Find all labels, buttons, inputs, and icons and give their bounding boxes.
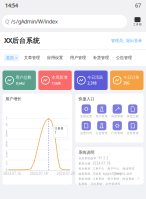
button[interactable]: 本周新增	[38, 70, 72, 90]
staticText: 应用设置	[80, 115, 92, 118]
staticText: 工具箱	[133, 23, 142, 26]
staticText: 0.6	[6, 134, 8, 144]
button[interactable]: 应用设置	[78, 104, 94, 118]
button[interactable]: 应用设置	[45, 54, 65, 61]
staticText: 补货管理	[93, 55, 109, 60]
button[interactable]: 今日活跃	[74, 70, 108, 90]
staticText: 今日订单	[123, 75, 139, 80]
staticText: 包含模块: 订单中心、用户中心、商品管理	[78, 167, 134, 170]
button[interactable]: 今日订单	[110, 70, 143, 90]
staticText: 更新日期: 2024-07-18	[78, 162, 110, 165]
staticText: 公告管理	[96, 131, 108, 135]
button[interactable]: 补货管理	[91, 54, 111, 61]
staticText: 运营日历	[80, 131, 92, 135]
staticText: 文件管理	[127, 131, 139, 135]
staticText: 告系统、日志系统、文件管理等	[78, 182, 120, 185]
staticText: 8,642	[15, 80, 24, 86]
staticText: 广告管理	[111, 131, 123, 135]
staticText: 0.8	[6, 123, 8, 134]
button[interactable]: 文章管理	[22, 54, 42, 61]
staticText: 0	[6, 169, 8, 172]
staticText: 当前系统版本: V1.5.2	[78, 156, 108, 160]
button[interactable]: 公告管理	[94, 121, 109, 135]
staticText: 本页文档	[127, 115, 139, 118]
staticText: Q	[5, 18, 9, 25]
staticText: 快捷入口	[78, 96, 94, 101]
staticText: XX后台系统	[4, 36, 40, 45]
staticText: 用户管理	[96, 115, 108, 118]
button[interactable]: 广告管理	[109, 121, 125, 135]
staticText: 用户管理	[70, 55, 86, 60]
button[interactable]: 首页 ×	[4, 54, 19, 61]
button[interactable]: 用户管理	[94, 104, 109, 118]
button[interactable]: 运营日历	[78, 121, 94, 135]
staticText: 用户增长	[5, 96, 21, 101]
staticText: 首页 ×	[6, 55, 17, 60]
staticText: /s/gAdmin/W/index	[11, 18, 58, 25]
staticText: 管理员, 退出登录	[111, 38, 142, 43]
staticText: 14:54	[5, 2, 18, 9]
staticText: 2,318	[87, 80, 96, 86]
button[interactable]: 工具箱	[130, 17, 145, 26]
staticText: 本周新增	[51, 75, 67, 80]
staticText: 用户总数	[15, 75, 31, 80]
staticText: 公告管理	[116, 55, 132, 60]
staticText: 系统说明	[78, 150, 94, 155]
staticText: 文章管理	[24, 55, 40, 60]
staticText: 1	[6, 117, 8, 120]
staticText: 如需帮助, 可联系 support@example.com	[78, 172, 131, 175]
staticText: 0.2	[6, 155, 8, 165]
button[interactable]: 本页文档	[125, 104, 140, 118]
staticText: 补货管理	[111, 115, 123, 118]
button[interactable]: 补货管理	[109, 104, 125, 118]
button[interactable]: 文件管理	[125, 121, 140, 135]
staticText: 应用设置	[47, 55, 63, 60]
staticText: 1,024	[51, 80, 60, 86]
button[interactable]: 用户管理	[68, 54, 88, 61]
staticText: 396	[123, 80, 129, 86]
staticText: 2024-07-16	[3, 172, 21, 175]
staticText: 注册量	[55, 127, 64, 130]
button[interactable]: 公告管理	[114, 54, 134, 61]
staticText: 2024-07-18	[30, 172, 48, 175]
staticText: 系统功能: 订单系统、用户系统、内容系统、广	[78, 177, 140, 181]
staticText: 2024-07-20	[57, 172, 75, 175]
button[interactable]: 用户总数	[2, 70, 36, 90]
staticText: 1	[55, 131, 57, 134]
staticText: 今日活跃	[87, 75, 103, 80]
staticText: 0.4	[6, 144, 8, 155]
staticText: 67	[135, 2, 141, 9]
